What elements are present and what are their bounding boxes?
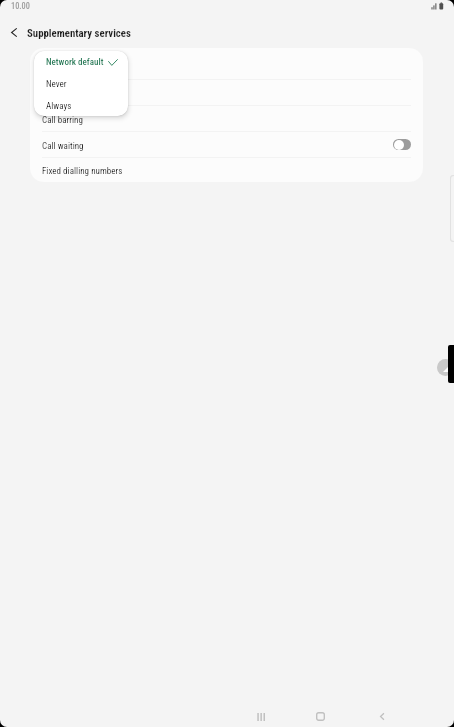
button[interactable]: Caller ID [30, 48, 423, 79]
staticText: Caller ID [42, 60, 73, 71]
staticText: Fixed dialling numbers [42, 166, 123, 177]
staticText: Always [46, 101, 72, 112]
button[interactable]: Back [372, 706, 393, 727]
button[interactable]: Open edge panel [437, 359, 454, 376]
button[interactable]: Always [34, 95, 128, 116]
staticText: 10.00 [11, 1, 30, 11]
button[interactable]: Never [34, 73, 128, 95]
staticText: Never [46, 79, 67, 90]
button[interactable]: Navigate up [3, 22, 25, 44]
staticText: Call barring [42, 115, 83, 126]
staticText: Call waiting [42, 141, 84, 152]
button[interactable]: Recent apps [250, 706, 271, 727]
button[interactable]: Call waiting switch [393, 139, 411, 150]
staticText: Supplementary services [27, 27, 131, 40]
button[interactable]: Call forwarding [30, 79, 423, 105]
button[interactable]: Home [310, 706, 331, 727]
staticText: Network default [46, 57, 104, 68]
button[interactable]: Call barring [30, 105, 423, 131]
button[interactable]: Call waiting [30, 131, 423, 157]
button[interactable]: Network default [34, 51, 128, 73]
button[interactable]: Fixed dialling numbers [30, 157, 423, 182]
